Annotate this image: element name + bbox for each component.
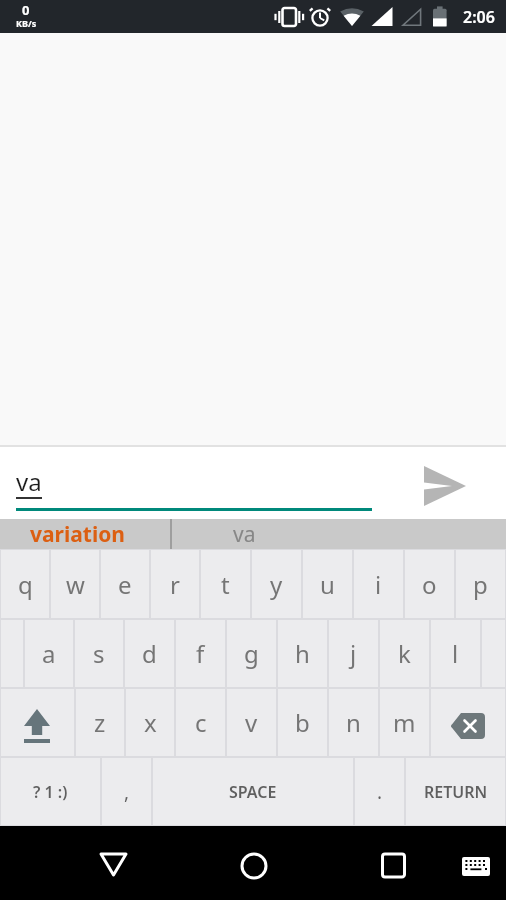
button[interactable]	[88, 841, 138, 891]
staticText: ,	[124, 779, 130, 805]
button[interactable]: z	[76, 689, 124, 756]
button[interactable]: h	[278, 620, 327, 687]
staticText: 2:06	[463, 6, 495, 28]
staticText: s	[93, 637, 105, 670]
staticText: c	[195, 706, 207, 739]
button[interactable]: j	[329, 620, 378, 687]
staticText: y	[270, 568, 283, 601]
button[interactable]: y	[252, 550, 301, 618]
staticText: m	[393, 706, 416, 739]
staticText: o	[422, 568, 437, 601]
button[interactable]: t	[201, 550, 250, 618]
staticText: b	[295, 706, 310, 739]
button[interactable]: s	[75, 620, 123, 687]
button[interactable]: o	[405, 550, 454, 618]
button[interactable]: g	[227, 620, 276, 687]
button[interactable]: u	[303, 550, 352, 618]
button[interactable]: .	[355, 758, 404, 825]
staticText: RETURN	[424, 781, 488, 803]
staticText: va	[16, 465, 42, 498]
button[interactable]: w	[51, 550, 99, 618]
staticText: z	[94, 706, 106, 739]
button[interactable]: ? 1 :)	[1, 758, 100, 825]
staticText: ? 1 :)	[33, 781, 68, 803]
button[interactable]: ,	[102, 758, 151, 825]
button[interactable]: v	[227, 689, 276, 756]
button[interactable]: va	[172, 519, 317, 549]
button[interactable]: p	[456, 550, 505, 618]
button[interactable]: f	[176, 620, 225, 687]
staticText: v	[245, 706, 258, 739]
staticText: g	[244, 637, 259, 670]
staticText: n	[346, 706, 361, 739]
staticText: t	[221, 568, 230, 601]
button[interactable]	[431, 689, 505, 756]
staticText: p	[473, 568, 488, 601]
staticText: l	[452, 637, 459, 670]
staticText: d	[142, 637, 157, 670]
staticText: k	[398, 637, 411, 670]
button[interactable]: q	[1, 550, 49, 618]
button[interactable]: x	[126, 689, 174, 756]
button[interactable]	[452, 841, 500, 891]
button[interactable]: b	[278, 689, 327, 756]
staticText: .	[377, 779, 383, 805]
button[interactable]: e	[101, 550, 149, 618]
staticText: x	[144, 706, 157, 739]
staticText: SPACE	[229, 781, 277, 803]
staticText: q	[18, 568, 33, 601]
staticText: variation	[30, 520, 125, 549]
button[interactable]: r	[151, 550, 199, 618]
staticText: u	[320, 568, 335, 601]
button[interactable]: i	[354, 550, 403, 618]
button[interactable]: l	[431, 620, 480, 687]
button[interactable]: d	[125, 620, 174, 687]
staticText: i	[375, 568, 382, 601]
button[interactable]: n	[329, 689, 378, 756]
staticText: r	[170, 568, 180, 601]
staticText: h	[295, 637, 310, 670]
button[interactable]: m	[380, 689, 429, 756]
staticText: e	[118, 568, 132, 601]
staticText: w	[66, 568, 85, 601]
staticText: 0	[22, 1, 30, 19]
button[interactable]: c	[176, 689, 225, 756]
staticText: a	[42, 637, 56, 670]
button[interactable]: SPACE	[153, 758, 353, 825]
button[interactable]: RETURN	[406, 758, 505, 825]
button[interactable]	[229, 841, 279, 891]
button[interactable]: variation	[0, 519, 170, 549]
staticText: va	[233, 520, 256, 549]
staticText: KB/s	[16, 17, 37, 29]
staticText: j	[350, 637, 357, 670]
button[interactable]	[1, 689, 74, 756]
button[interactable]	[404, 447, 486, 519]
button[interactable]	[368, 841, 418, 891]
button[interactable]: k	[380, 620, 429, 687]
button[interactable]: a	[25, 620, 73, 687]
staticText: f	[196, 637, 205, 670]
